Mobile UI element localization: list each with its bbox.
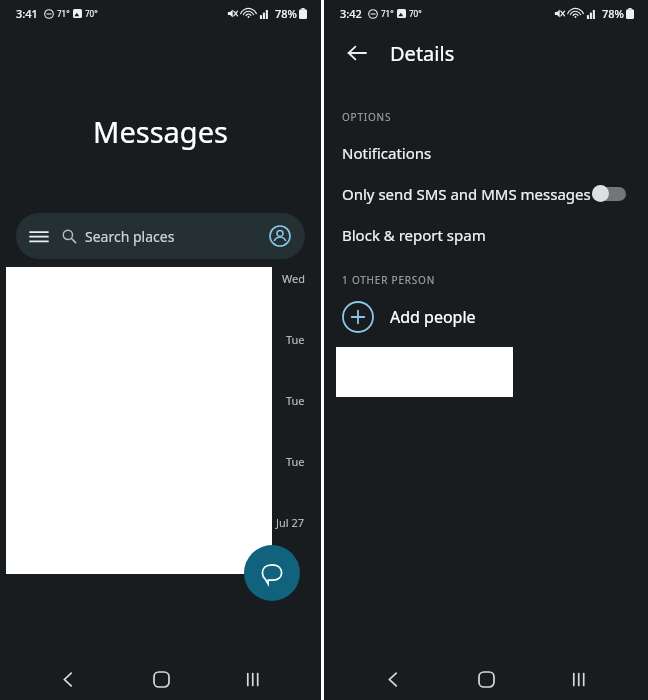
staticText: 70° xyxy=(409,8,422,19)
staticText: 3:42 xyxy=(340,6,362,21)
staticText: 3:41 xyxy=(16,6,38,21)
staticText: Details xyxy=(390,40,455,67)
staticText: 71° xyxy=(57,8,70,19)
staticText: Notifications xyxy=(342,143,432,163)
button[interactable]: Back xyxy=(44,658,92,700)
staticText: Search places xyxy=(85,227,175,246)
button[interactable]: Home xyxy=(462,658,510,700)
staticText: OPTIONS xyxy=(342,110,392,124)
button[interactable]: Recent apps xyxy=(229,658,277,700)
button[interactable]: Notifications xyxy=(324,136,648,169)
staticText: Wed xyxy=(282,271,305,286)
button[interactable]: Back xyxy=(338,34,376,72)
staticText: Messages xyxy=(0,112,321,151)
staticText: Block & report spam xyxy=(342,225,486,245)
staticText: 70° xyxy=(85,8,98,19)
staticText: Jul 27 xyxy=(276,515,305,530)
staticText: Tue xyxy=(286,332,305,347)
button[interactable]: Back xyxy=(369,658,417,700)
staticText: Add people xyxy=(390,306,476,328)
staticText: 78% xyxy=(602,6,624,21)
button[interactable]: Add people xyxy=(324,295,648,339)
button[interactable]: Search places xyxy=(16,213,305,259)
staticText: 71° xyxy=(381,8,394,19)
button[interactable]: Only send SMS and MMS messages xyxy=(324,177,648,210)
staticText: Only send SMS and MMS messages xyxy=(342,184,591,204)
staticText: Tue xyxy=(286,393,305,408)
button[interactable]: New conversation xyxy=(244,545,300,601)
button[interactable]: Home xyxy=(137,658,185,700)
staticText: 1 OTHER PERSON xyxy=(342,273,436,287)
staticText: 78% xyxy=(275,6,297,21)
staticText: Tue xyxy=(286,454,305,469)
button[interactable]: Block & report spam xyxy=(324,218,648,251)
button[interactable]: Recent apps xyxy=(555,658,603,700)
